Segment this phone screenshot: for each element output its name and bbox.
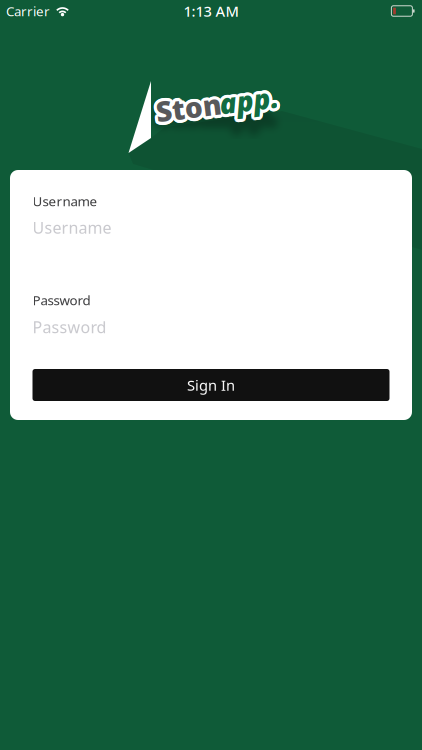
staticText: app. (218, 88, 278, 125)
staticText: app. (222, 88, 282, 125)
staticText: app. (217, 84, 277, 121)
staticText: Ston (158, 88, 224, 125)
staticText: app. (218, 82, 278, 120)
staticText: app. (217, 88, 277, 125)
staticText: app. (223, 85, 283, 123)
staticText: app. (219, 85, 279, 123)
staticText: app. (222, 87, 282, 124)
staticText: Sign In (187, 375, 235, 395)
staticText: 1:13 AM (183, 1, 238, 21)
staticText: app. (217, 83, 277, 120)
button[interactable]: Password text field (10, 312, 412, 342)
staticText: Ston (154, 88, 220, 125)
staticText: Ston (158, 87, 224, 124)
staticText: Ston (152, 85, 218, 123)
staticText: app. (222, 83, 282, 120)
staticText: Ston (157, 88, 223, 125)
staticText: Password (32, 291, 90, 309)
staticText: Ston (153, 83, 219, 120)
staticText: Username (32, 192, 97, 210)
staticText: Ston (159, 85, 225, 123)
staticText: Ston (155, 88, 221, 126)
staticText: app. (219, 88, 279, 126)
staticText: app. (221, 82, 281, 120)
staticText: app. (217, 87, 277, 124)
staticText: app. (216, 85, 276, 123)
staticText: Password (32, 316, 106, 338)
button[interactable]: Sign In (32, 369, 389, 401)
staticText: app. (221, 88, 281, 125)
staticText: Ston (157, 82, 223, 120)
staticText: Ston (153, 84, 219, 121)
staticText: Ston (158, 84, 224, 121)
staticText: Carrier (6, 2, 50, 20)
staticText: Ston (155, 85, 221, 123)
staticText: Ston (154, 82, 220, 120)
staticText: Ston (153, 87, 219, 124)
staticText: app. (222, 84, 282, 121)
staticText: Ston (153, 88, 219, 125)
staticText: Username (32, 217, 111, 238)
button[interactable]: Username text field (10, 212, 412, 242)
staticText: Ston (155, 82, 221, 119)
staticText: app. (219, 82, 279, 119)
staticText: Ston (158, 83, 224, 120)
